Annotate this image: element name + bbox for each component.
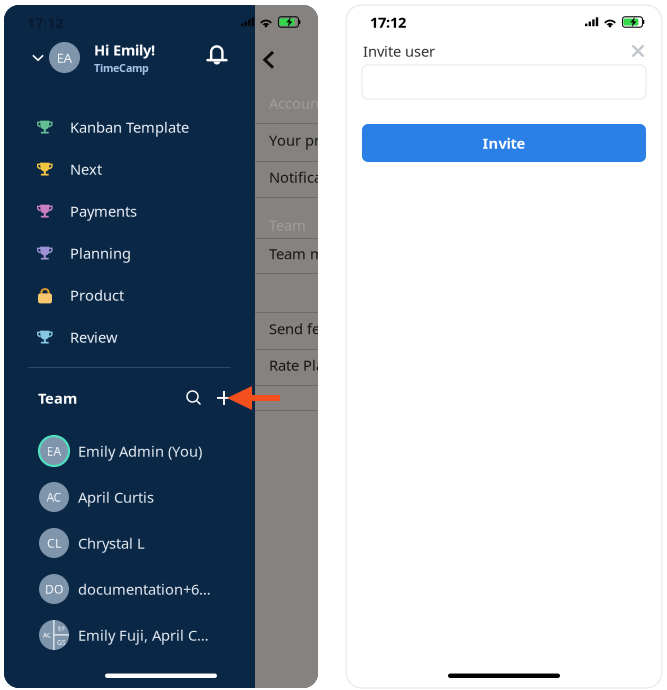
staticText: April Curtis [78,487,154,507]
button[interactable]: DO [4,566,255,612]
button[interactable]: Search team [179,383,209,413]
button[interactable]: Notifications [202,41,234,73]
staticText: 17:12 [370,12,406,32]
staticText: 17:12 [27,13,63,32]
staticText: Team members [269,244,376,263]
button[interactable]: Review [4,316,255,358]
staticText: Review [70,327,118,347]
staticText: AC [43,631,51,639]
staticText: Chrystal L [78,533,145,553]
staticText: Team [269,215,306,235]
button[interactable]: Add team member [209,383,239,413]
button[interactable]: Kanban Template [4,106,255,148]
staticText: EA [46,443,61,459]
staticText: Your profile [269,130,350,150]
staticText: Emily Admin (You) [78,441,202,461]
button[interactable]: Close [623,36,653,66]
staticText: DO [45,581,63,597]
staticText: Planning [70,243,131,263]
staticText: Invite [482,133,525,153]
staticText: Invite user [363,41,435,61]
button[interactable]: Product [4,274,255,316]
staticText: Kanban Template [70,117,189,137]
staticText: Payments [70,201,137,221]
button[interactable]: Invite [362,124,646,162]
button[interactable]: AC [4,474,255,520]
staticText: Account [269,93,324,113]
staticText: Rate Planner [269,355,356,375]
button[interactable]: Payments [4,190,255,232]
button[interactable]: Planning [4,232,255,274]
staticText: Team [38,388,77,408]
staticText: Notifications [269,167,356,187]
button[interactable]: Switch workspace [27,44,49,70]
button[interactable]: CL [4,520,255,566]
staticText: AC [46,489,61,505]
staticText: EF [58,624,65,632]
staticText: EA [56,49,72,66]
staticText: TimeCamp [94,61,149,75]
button[interactable]: Next [4,148,255,190]
staticText: documentation+6… [78,579,211,599]
staticText: Emily Fuji, April C… [78,625,209,645]
staticText: Hi Emily! [94,40,155,60]
button[interactable]: EA [4,428,255,474]
staticText: CL [47,535,61,551]
button[interactable]: AC [4,612,255,658]
staticText: Send feedback [269,319,369,338]
staticText: Product [70,285,124,305]
staticText: Next [70,159,102,179]
staticText: GS [57,638,66,647]
